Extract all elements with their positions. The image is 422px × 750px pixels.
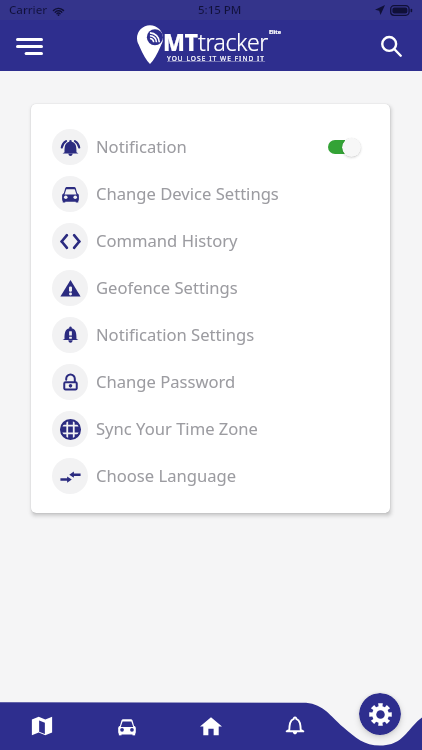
button[interactable]: Notifications	[275, 706, 315, 746]
staticText: MT	[163, 26, 198, 57]
staticText: YOU LOSE IT WE FIND IT	[167, 54, 266, 63]
button[interactable]: Notification toggle	[327, 135, 363, 159]
staticText: Change Password	[96, 370, 236, 393]
staticText: Notification	[96, 135, 187, 158]
staticText: tracker	[198, 26, 269, 57]
staticText: Sync Your Time Zone	[96, 417, 258, 440]
button[interactable]: Settings	[359, 693, 401, 735]
staticText: Notification Settings	[96, 323, 255, 346]
button[interactable]: Map	[22, 706, 62, 746]
button[interactable]: Notification	[31, 123, 390, 170]
button[interactable]: Change Device Settings	[31, 170, 390, 217]
button[interactable]: Change Password	[31, 358, 390, 405]
staticText: 5:15 PM	[198, 2, 242, 18]
staticText: Choose Language	[96, 464, 237, 487]
button[interactable]: Open navigation menu	[8, 25, 50, 67]
button[interactable]: Command History	[31, 217, 390, 264]
staticText: Geofence Settings	[96, 276, 238, 299]
staticText: Carrier	[9, 2, 48, 18]
staticText: Change Device Settings	[96, 182, 279, 205]
button[interactable]: Home	[191, 706, 231, 746]
staticText: Elite	[269, 28, 282, 35]
button[interactable]: Vehicles	[107, 707, 147, 747]
button[interactable]: Notification Settings	[31, 311, 390, 358]
button[interactable]: Sync Your Time Zone	[31, 405, 390, 452]
button[interactable]: Search	[370, 25, 412, 67]
button[interactable]: Geofence Settings	[31, 264, 390, 311]
staticText: Command History	[96, 229, 238, 252]
button[interactable]: Choose Language	[31, 452, 390, 499]
